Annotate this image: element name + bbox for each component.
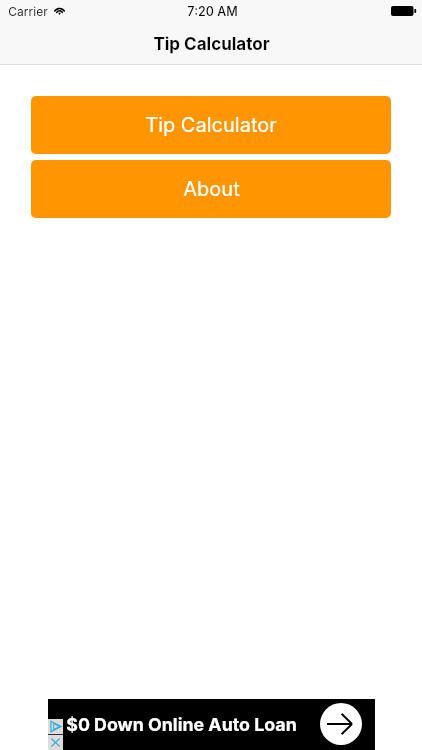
staticText: About: [183, 177, 240, 201]
staticText: Tip Calculator: [145, 113, 277, 137]
staticText: Carrier: [8, 4, 48, 19]
staticText: Tip Calculator: [153, 34, 270, 55]
button[interactable]: Tip Calculator: [31, 96, 391, 154]
button[interactable]: Ad choices: [48, 719, 63, 734]
button[interactable]: Ad choices: [48, 699, 375, 750]
staticText: 7:20 AM: [187, 4, 238, 19]
staticText: $0 Down Online Auto Loan: [66, 714, 297, 736]
button[interactable]: Open advertisement: [320, 703, 362, 745]
button[interactable]: About: [31, 160, 391, 218]
button[interactable]: Close ad: [48, 735, 63, 750]
